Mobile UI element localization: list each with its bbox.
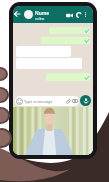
button[interactable] bbox=[41, 37, 90, 44]
button[interactable]: Voice message bbox=[80, 95, 91, 106]
staticText: Nume bbox=[35, 10, 50, 17]
button[interactable] bbox=[46, 73, 90, 81]
button[interactable]: Back bbox=[14, 11, 20, 17]
button[interactable]: Type a message bbox=[15, 96, 79, 106]
staticText: online bbox=[35, 17, 45, 21]
button[interactable] bbox=[49, 27, 90, 34]
other: Attach bbox=[65, 98, 71, 104]
button[interactable]: Video call bbox=[65, 11, 73, 19]
button[interactable]: More options bbox=[82, 11, 89, 18]
staticText: Type a message bbox=[24, 99, 53, 104]
button[interactable]: Call bbox=[75, 11, 83, 19]
other: Camera bbox=[72, 98, 78, 104]
